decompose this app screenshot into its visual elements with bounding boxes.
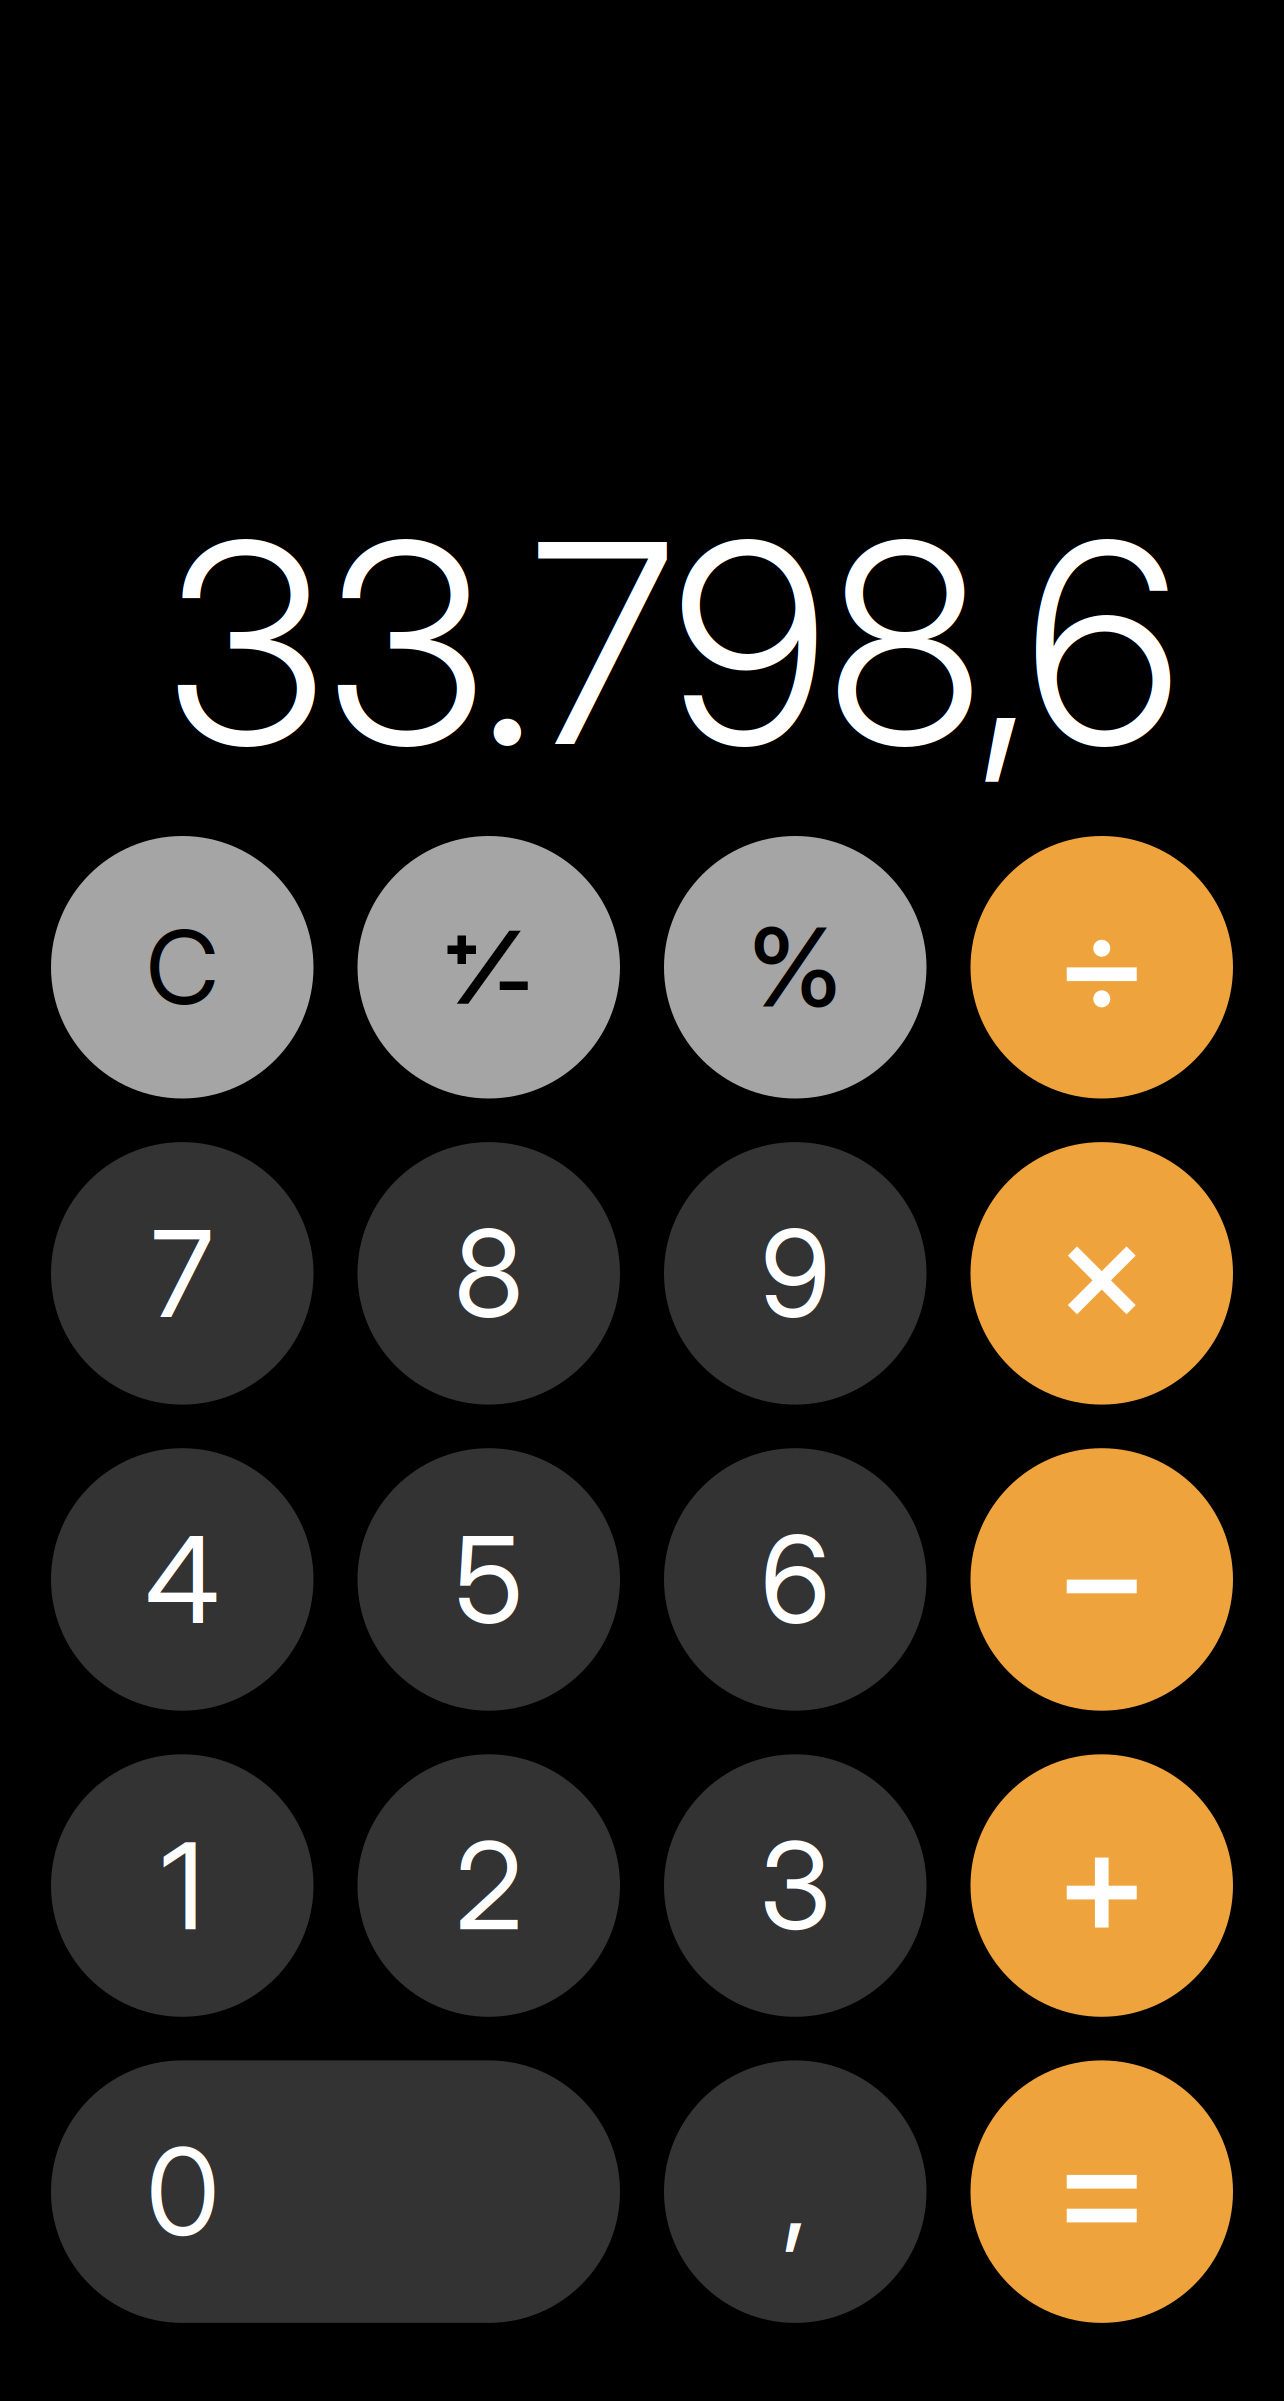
button[interactable]: 4 [51,1448,313,1711]
staticText: 3 [759,1813,831,1958]
staticText: 9 [760,1201,830,1346]
button[interactable]: 1 [51,1754,313,2017]
button[interactable]: , [664,2060,926,2323]
staticText: 0 [146,2119,220,2264]
button[interactable]: Toggle sign [357,836,620,1098]
button[interactable]: Subtract [970,1448,1233,1711]
button[interactable]: 3 [664,1754,926,2017]
button[interactable]: 8 [357,1142,620,1405]
staticText: 1 [161,1813,204,1958]
button[interactable]: Add [970,1754,1233,2017]
button[interactable]: C [51,836,313,1098]
button[interactable]: 2 [357,1754,620,2017]
button[interactable]: 7 [51,1142,313,1405]
button[interactable]: 5 [357,1448,620,1711]
staticText: 4 [145,1507,219,1652]
staticText: 6 [760,1507,830,1652]
staticText: 7 [151,1201,213,1346]
button[interactable]: Multiply [970,1142,1233,1405]
button[interactable]: 6 [664,1448,926,1711]
button[interactable]: Equals [970,2060,1233,2323]
button[interactable]: 0 [51,2060,620,2323]
button[interactable]: Divide [970,836,1233,1098]
staticText: C [146,906,219,1028]
staticText: % [748,902,843,1033]
staticText: 5 [454,1507,523,1652]
staticText: 2 [455,1813,522,1958]
staticText: , [782,2119,808,2264]
staticText: 8 [454,1201,524,1346]
button[interactable]: % [664,836,926,1098]
staticText: 33.798,6 [166,475,1181,811]
button[interactable]: 9 [664,1142,926,1405]
